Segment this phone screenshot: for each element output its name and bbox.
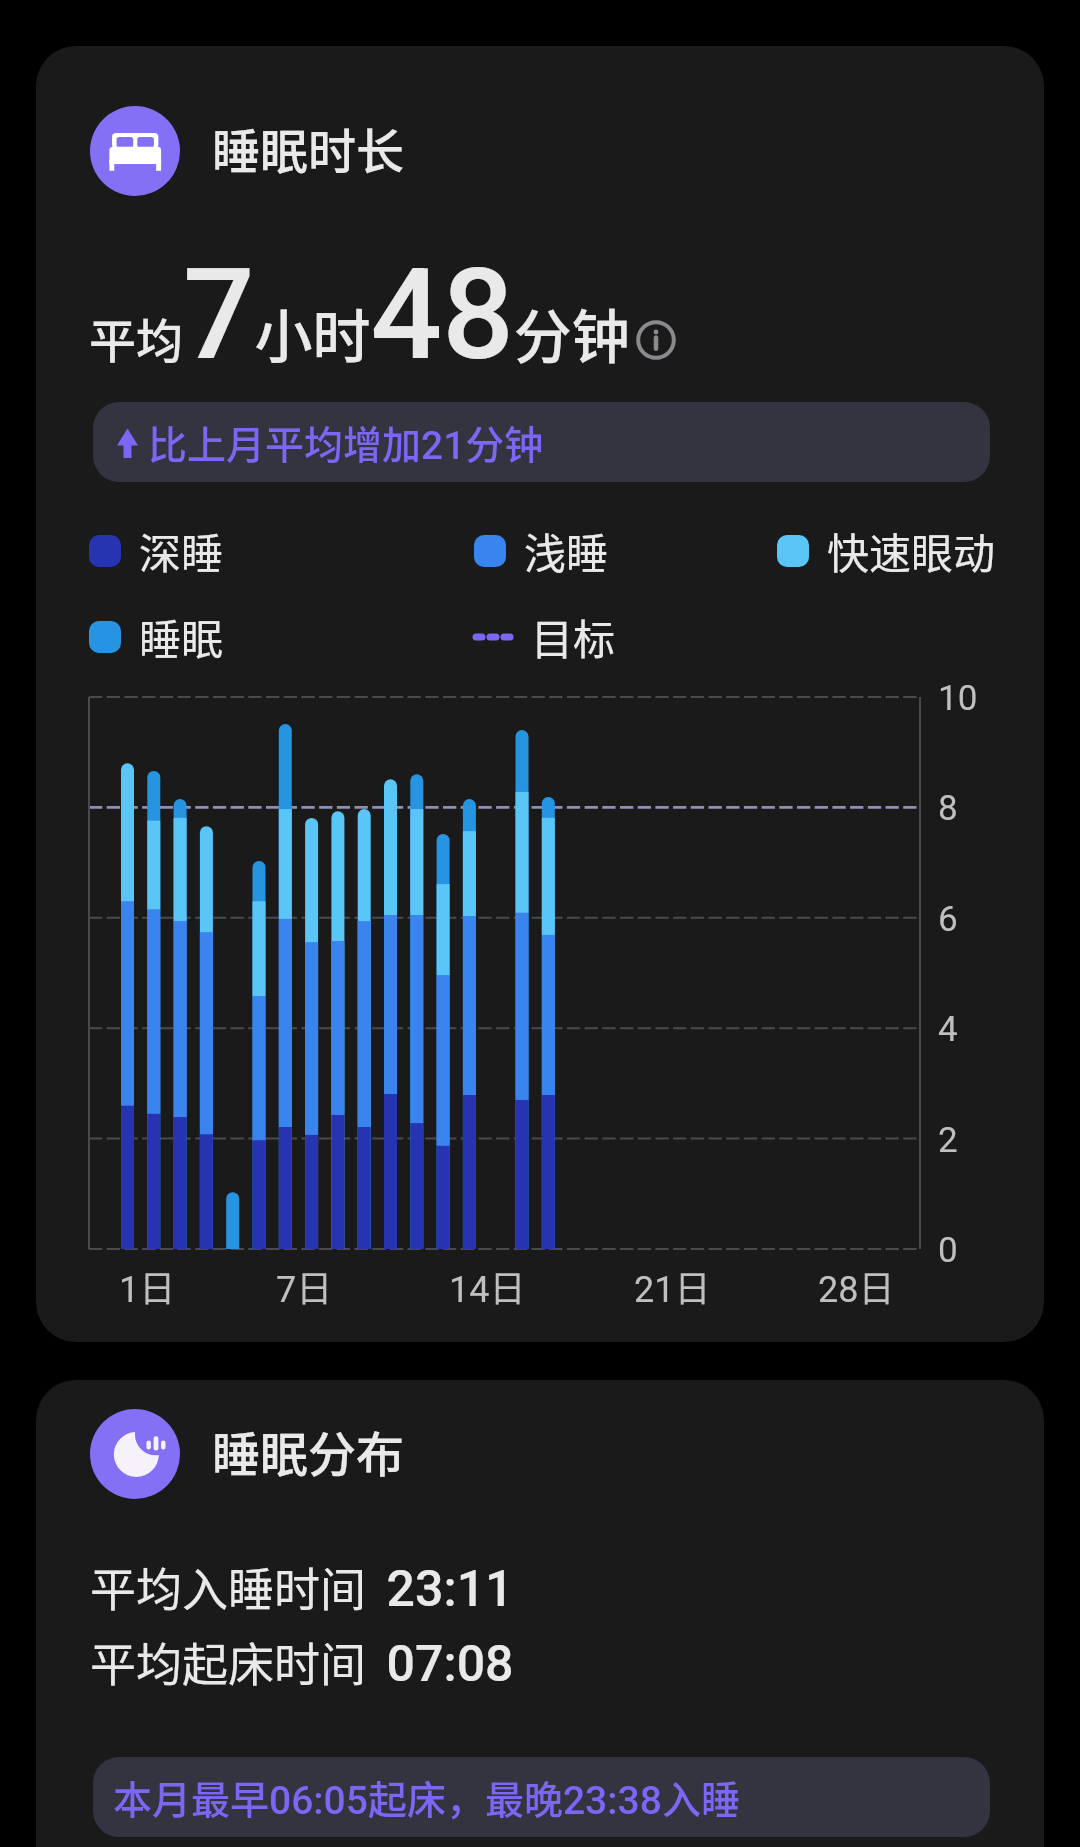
staticText: 目标 (531, 606, 616, 667)
staticText: 平均入睡时间 23:11 (90, 1553, 514, 1620)
staticText: 平均起床时间 07:08 (90, 1628, 514, 1695)
staticText: 8 (938, 788, 958, 829)
staticText: 睡眠时长 (212, 113, 405, 183)
button[interactable]: 睡眠 (89, 606, 224, 667)
button[interactable]: 目标 (472, 606, 616, 667)
staticText: 6 (938, 899, 958, 940)
staticText: 28日 (818, 1260, 895, 1312)
button[interactable]: 睡眠分布 (36, 1380, 1044, 1847)
staticText: 比上月平均增加21分钟 (148, 414, 544, 470)
staticText: 快速眼动 (827, 520, 996, 581)
button[interactable]: 浅睡 (474, 520, 609, 581)
staticText: 10 (938, 678, 978, 719)
staticText: 本月最早06:05起床，最晚23:38入睡 (113, 1769, 740, 1825)
staticText: 21日 (634, 1260, 711, 1312)
button[interactable]: 说明 (634, 318, 678, 362)
button[interactable]: 比上月平均增加21分钟 (93, 402, 990, 482)
staticText: 1日 (119, 1260, 176, 1312)
staticText: 2 (938, 1120, 958, 1161)
staticText: 7日 (276, 1260, 333, 1312)
button[interactable]: 本月最早06:05起床，最晚23:38入睡 (93, 1757, 990, 1837)
staticText: 4 (938, 1009, 958, 1050)
staticText: 平均7小时48分钟 (89, 241, 630, 389)
button[interactable]: 深睡 (89, 520, 224, 581)
button[interactable]: 睡眠时长 (36, 46, 1044, 1342)
staticText: 深睡 (139, 520, 224, 581)
button[interactable]: 快速眼动 (777, 520, 996, 581)
staticText: 14日 (449, 1260, 526, 1312)
staticText: 浅睡 (524, 520, 609, 581)
staticText: 0 (938, 1230, 958, 1271)
staticText: 睡眠分布 (212, 1416, 405, 1486)
staticText: 睡眠 (139, 606, 224, 667)
